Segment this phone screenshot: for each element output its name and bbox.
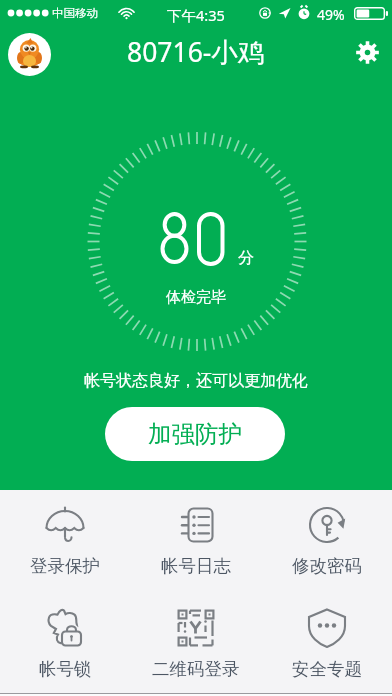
staticText: 加强防护 [148, 419, 242, 449]
staticText: 分 [238, 248, 254, 268]
button[interactable]: 帐号锁 [0, 593, 130, 696]
button[interactable]: Profile avatar [8, 33, 51, 76]
staticText: 帐号状态良好，还可以更加优化 [84, 371, 308, 391]
staticText: 80716-小鸡 [127, 34, 265, 70]
staticText: 49% [317, 5, 345, 24]
staticText: 体检完毕 [166, 288, 226, 307]
button[interactable]: 修改密码 [261, 490, 392, 593]
button[interactable]: 安全专题 [261, 593, 392, 696]
staticText: 二维码登录 [152, 658, 240, 680]
staticText: 帐号日志 [161, 555, 231, 577]
button[interactable]: 加强防护 [105, 407, 285, 461]
button[interactable]: 二维码登录 [130, 593, 261, 696]
button[interactable]: Settings [351, 36, 383, 68]
staticText: 安全专题 [292, 658, 362, 680]
staticText: 下午4:35 [167, 5, 225, 25]
staticText: 修改密码 [292, 555, 362, 577]
staticText: 帐号锁 [39, 658, 92, 680]
button[interactable]: 登录保护 [0, 490, 130, 593]
button[interactable]: 帐号日志 [130, 490, 261, 593]
staticText: 中国移动 [52, 6, 98, 20]
staticText: 登录保护 [30, 555, 100, 577]
